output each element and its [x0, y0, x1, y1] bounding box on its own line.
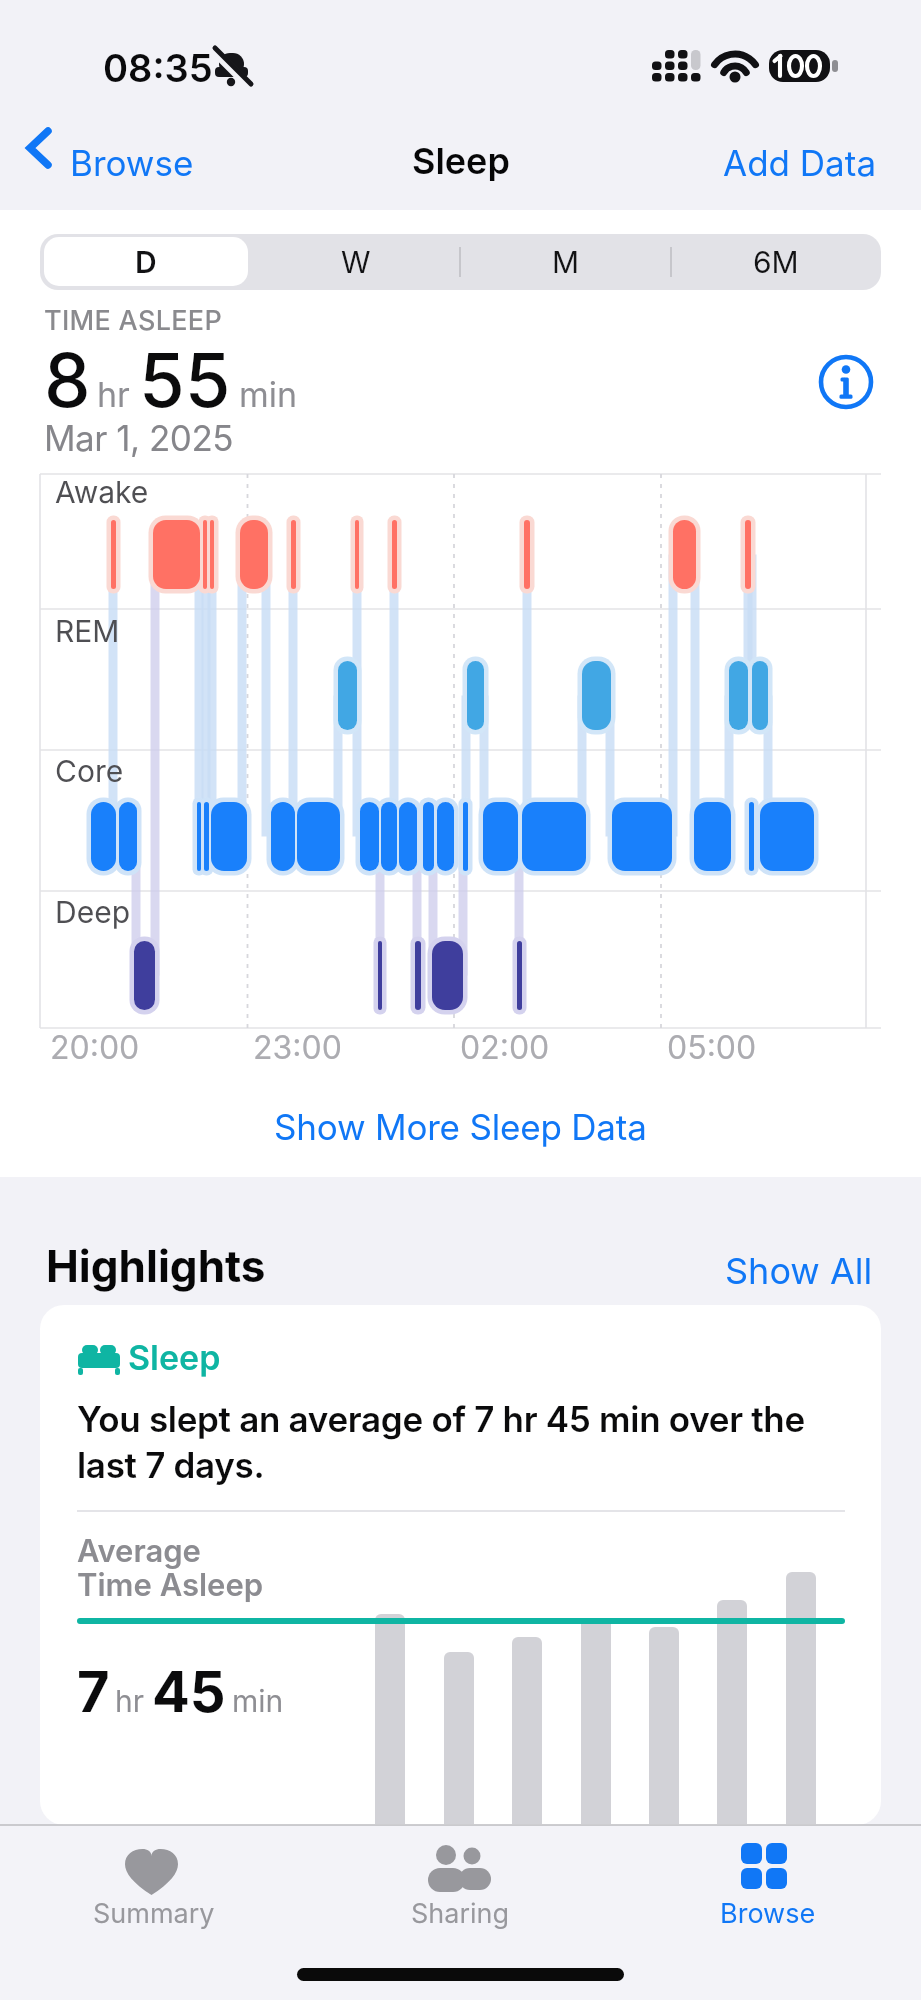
button[interactable]: 6M — [671, 234, 881, 290]
staticText: Highlights — [46, 1239, 266, 1292]
staticText: Browse — [720, 1897, 816, 1930]
staticText: W — [341, 244, 371, 280]
staticText: REM — [55, 613, 120, 649]
staticText: Add Data — [723, 142, 877, 184]
button[interactable]: Summary — [0, 1826, 307, 1961]
staticText: Summary — [93, 1897, 215, 1930]
staticText: Show More Sleep Data — [274, 1106, 647, 1148]
staticText: Mar 1, 2025 — [44, 417, 233, 459]
button[interactable]: Show More Sleep Data — [274, 1106, 647, 1148]
staticText: Core — [55, 753, 124, 789]
staticText: hr — [97, 374, 130, 415]
button[interactable]: D — [40, 234, 251, 290]
staticText: Show All — [725, 1249, 873, 1293]
staticText: Sleep — [412, 139, 510, 183]
button[interactable]: M — [461, 234, 671, 290]
staticText: 08:35 — [103, 45, 213, 91]
staticText: hr — [115, 1683, 145, 1719]
staticText: min — [232, 1683, 284, 1719]
staticText: 8 — [44, 335, 91, 425]
button[interactable]: Add Data — [723, 130, 877, 184]
staticText: 02:00 — [460, 1028, 550, 1067]
button[interactable]: Show All — [725, 1249, 873, 1293]
button[interactable]: Sharing — [307, 1826, 614, 1961]
button[interactable] — [818, 355, 874, 411]
staticText: 7 — [77, 1658, 110, 1726]
staticText: 6M — [753, 244, 799, 280]
staticText: 05:00 — [667, 1028, 757, 1067]
staticText: 20:00 — [50, 1028, 140, 1067]
button[interactable] — [40, 1305, 881, 1825]
staticText: min — [239, 374, 298, 415]
staticText: M — [552, 244, 580, 280]
button[interactable]: W — [251, 234, 461, 290]
staticText: 55 — [139, 335, 231, 425]
staticText: Browse — [70, 142, 194, 184]
staticText: TIME ASLEEP — [44, 304, 223, 337]
staticText: D — [135, 244, 157, 280]
staticText: 23:00 — [253, 1028, 342, 1067]
staticText: You slept an average of 7 hr 45 min over… — [77, 1398, 805, 1486]
staticText: Average Time Asleep — [77, 1532, 264, 1604]
staticText: Sharing — [411, 1897, 510, 1930]
button[interactable]: Browse — [614, 1826, 921, 1961]
staticText: Deep — [55, 894, 130, 930]
staticText: Sleep — [128, 1337, 221, 1378]
staticText: Awake — [55, 474, 149, 510]
button[interactable]: Browse — [20, 130, 200, 194]
staticText: 45 — [152, 1658, 226, 1726]
